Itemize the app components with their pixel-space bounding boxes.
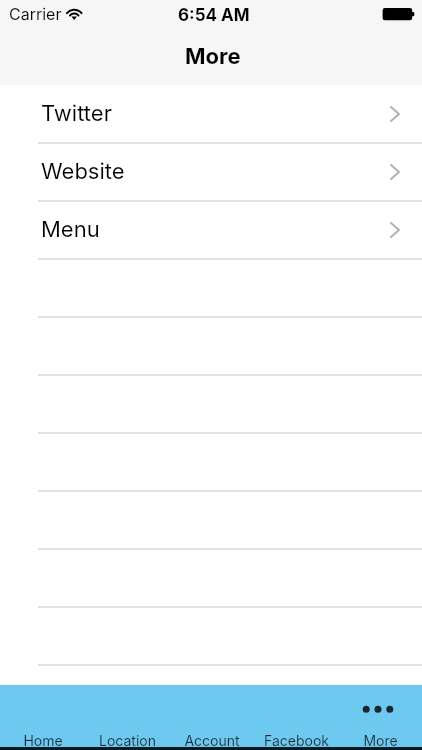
button[interactable]: Facebook [254, 685, 338, 750]
staticText: Facebook [264, 732, 329, 749]
button[interactable]: Location [85, 685, 170, 750]
staticText: 6:54 AM [178, 5, 250, 26]
staticText: Location [99, 732, 156, 749]
staticText: Carrier [9, 4, 62, 23]
button[interactable]: Website [0, 144, 422, 202]
button[interactable]: Account [170, 685, 254, 750]
staticText: Menu [41, 216, 100, 243]
staticText: Website [41, 158, 125, 185]
staticText: Twitter [41, 100, 112, 127]
button[interactable]: More [338, 685, 422, 750]
staticText: Account [184, 732, 240, 749]
button[interactable]: Home [0, 685, 85, 750]
staticText: More [185, 43, 241, 70]
staticText: Home [23, 732, 63, 749]
button[interactable]: Menu [0, 202, 422, 260]
staticText: More [363, 732, 398, 749]
button[interactable]: Twitter [0, 86, 422, 144]
